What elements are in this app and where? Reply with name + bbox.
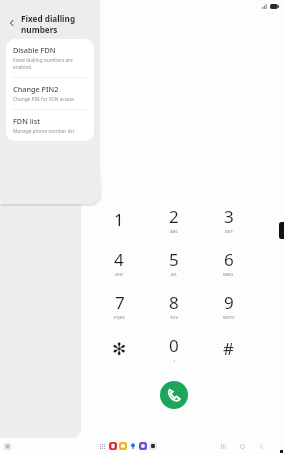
button[interactable]: 3 [201, 198, 256, 241]
staticText: PQRS [114, 315, 125, 321]
button[interactable]: App [109, 442, 117, 450]
button[interactable]: # [201, 327, 256, 370]
staticText: 2 [169, 205, 179, 228]
staticText: + [173, 358, 176, 364]
staticText: # [223, 337, 234, 360]
button[interactable]: 8 [146, 284, 201, 327]
staticText: 8 [169, 291, 179, 314]
button[interactable]: 6 [201, 241, 256, 284]
staticText: 3 [224, 205, 234, 228]
staticText: Fixed dialling numbers are enabled. [13, 57, 88, 71]
staticText: TUV [170, 315, 179, 321]
staticText: Fixed dialling numbers [21, 13, 100, 33]
staticText: DEF [225, 229, 233, 235]
button[interactable]: Change PIN2 [6, 78, 94, 109]
button[interactable]: 0 [146, 327, 201, 370]
staticText: 0 [169, 334, 179, 357]
button[interactable]: 2 [146, 198, 201, 241]
staticText: ✻ [112, 339, 127, 359]
button[interactable]: Back [256, 441, 266, 451]
button[interactable]: 9 [201, 284, 256, 327]
staticText: Manage phone number list [13, 128, 75, 135]
button[interactable]: App [139, 442, 147, 450]
button[interactable]: All apps [99, 443, 106, 450]
staticText: Disable FDN [13, 45, 56, 55]
button[interactable]: Recents [218, 441, 228, 451]
staticText: MNO [223, 272, 234, 278]
staticText: 9 [224, 291, 234, 314]
button[interactable]: 5 [146, 241, 201, 284]
staticText: 1 [114, 208, 124, 231]
button[interactable]: 7 [92, 284, 146, 327]
staticText: 7 [115, 291, 125, 314]
button[interactable]: 4 [92, 241, 146, 284]
staticText: WXYZ [223, 315, 235, 321]
button[interactable]: App [119, 442, 127, 450]
button[interactable]: FDN list [6, 110, 94, 141]
staticText: FDN list [13, 116, 41, 126]
staticText: 6 [224, 248, 234, 271]
staticText: 4 [114, 248, 124, 271]
button[interactable]: App [149, 442, 157, 450]
other: Back [7, 18, 17, 28]
staticText: Change PIN2 [13, 84, 59, 94]
staticText: JKL [171, 272, 178, 278]
staticText: ABC [170, 229, 179, 235]
staticText: Change PIN for FDN access [13, 96, 75, 103]
staticText: 5 [169, 248, 179, 271]
button[interactable]: Back [0, 13, 100, 33]
staticText: GHI [115, 272, 123, 278]
button[interactable]: App [4, 443, 11, 450]
button[interactable]: 1 [92, 198, 146, 241]
button[interactable]: Home [237, 441, 247, 451]
button[interactable]: App [129, 442, 137, 450]
button[interactable]: Call [160, 381, 188, 409]
button[interactable]: Disable FDN [6, 39, 94, 77]
button[interactable]: ✻ [92, 327, 146, 370]
